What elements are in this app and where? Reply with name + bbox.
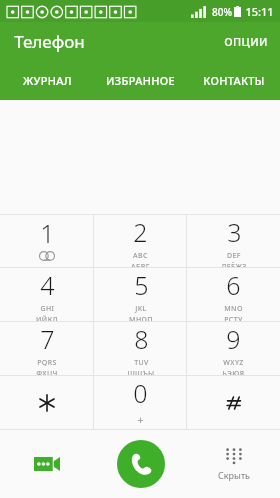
staticText: 3 (227, 215, 242, 249)
button[interactable]: Видеовызов (0, 430, 94, 498)
staticText: PQRS (37, 358, 57, 368)
staticText: ОПЦИИ (224, 34, 268, 49)
staticText: 1 (40, 216, 55, 250)
staticText: JKL (135, 304, 147, 314)
button[interactable]: ЖУРНАЛ (0, 60, 94, 100)
staticText: 4 (40, 268, 55, 302)
button[interactable]: ОПЦИИ (212, 26, 280, 57)
staticText: ФХЦЧ (36, 369, 58, 375)
staticText: РСТУ (224, 315, 243, 321)
button[interactable]: 1 (0, 215, 94, 267)
button[interactable]: Позвонить (117, 440, 165, 488)
staticText: КОНТАКТЫ (203, 73, 265, 88)
staticText: 15:11 (245, 4, 274, 19)
staticText: ШЩЪЫ (127, 369, 155, 375)
staticText: TUV (134, 358, 149, 368)
button[interactable]: Скрыть клавиатуру (187, 430, 280, 498)
staticText: Скрыть (218, 469, 250, 481)
button[interactable]: 4 (0, 268, 94, 321)
button[interactable]: КОНТАКТЫ (187, 60, 280, 100)
staticText: 9 (226, 322, 241, 356)
staticText: MNO (224, 304, 243, 314)
staticText: GHI (40, 304, 55, 314)
staticText: ЖУРНАЛ (23, 73, 72, 88)
staticText: Телефон (14, 30, 85, 53)
button[interactable] (0, 376, 94, 429)
staticText: 0 (133, 376, 148, 410)
button[interactable]: 7 (0, 322, 94, 375)
button[interactable]: 9 (187, 322, 280, 375)
staticText: DEF (227, 251, 241, 261)
staticText: 8 (134, 322, 149, 356)
staticText: АБВГ (131, 262, 150, 267)
staticText: 6 (226, 268, 241, 302)
staticText: ИЗБРАННОЕ (106, 73, 175, 88)
staticText: WXYZ (223, 358, 244, 368)
button[interactable]: 5 (94, 268, 187, 321)
staticText: 80% (212, 5, 232, 19)
staticText: 5 (134, 268, 149, 302)
button[interactable]: 2 (94, 215, 187, 267)
staticText: МНОП (129, 315, 153, 321)
button[interactable]: 8 (94, 322, 187, 375)
staticText: 7 (40, 322, 55, 356)
staticText: ЬЭЮЯ (222, 369, 245, 375)
staticText: ABC (133, 251, 148, 261)
staticText: 2 (133, 215, 148, 249)
staticText: + (137, 412, 144, 427)
button[interactable]: 3 (187, 215, 280, 267)
button[interactable]: 0 (94, 376, 187, 429)
staticText: ДЕЁЖЗ (221, 262, 247, 267)
button[interactable]: 6 (187, 268, 280, 321)
staticText: ИЙКЛ (36, 315, 58, 321)
button[interactable]: ИЗБРАННОЕ (94, 60, 187, 100)
button[interactable] (187, 376, 280, 429)
